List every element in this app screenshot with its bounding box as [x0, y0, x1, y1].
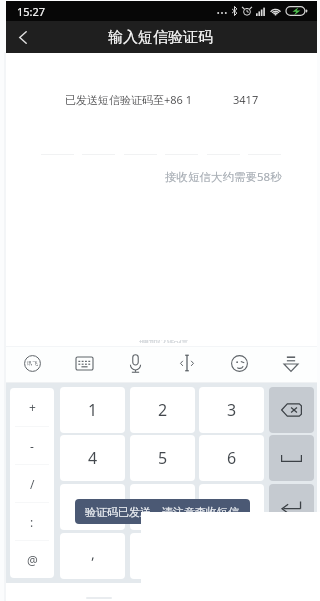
button[interactable]: Emoji	[223, 347, 255, 379]
staticText: 已发送短信验证码至+86 1	[65, 92, 193, 107]
staticText: 讯飞	[27, 360, 38, 367]
button[interactable]: +	[10, 388, 54, 426]
button[interactable]: 4	[60, 435, 125, 481]
button[interactable]: 9	[199, 484, 264, 530]
staticText: :	[30, 514, 34, 530]
button[interactable]: 8	[130, 484, 195, 530]
button[interactable]: Voice input	[119, 347, 151, 379]
button[interactable]: Space	[269, 435, 314, 481]
staticText: +	[29, 399, 36, 415]
staticText: 8	[158, 496, 168, 518]
button[interactable]: Backspace	[269, 387, 314, 433]
staticText: @	[27, 552, 38, 568]
button[interactable]: 1	[60, 387, 125, 433]
button[interactable]: Keyboard	[68, 347, 100, 379]
staticText: ,	[91, 544, 95, 563]
staticText: 增加(2)短信	[139, 340, 189, 343]
button[interactable]: Move cursor	[171, 347, 203, 379]
button[interactable]: 2	[130, 387, 195, 433]
staticText: 3417	[233, 92, 259, 107]
staticText: 4	[88, 447, 98, 469]
button[interactable]: ,	[60, 533, 125, 579]
button[interactable]: Back	[8, 22, 38, 52]
staticText: 接收短信大约需要58秒	[165, 169, 282, 185]
button[interactable]: -	[10, 427, 54, 464]
button[interactable]: Enter	[269, 484, 314, 530]
button[interactable]: 3	[199, 387, 264, 433]
staticText: 验证码已发送，请注意查收短信	[85, 505, 239, 519]
button[interactable]: 6	[199, 435, 264, 481]
staticText: 6	[227, 447, 237, 469]
button[interactable]: IME logo	[16, 347, 48, 379]
staticText: 3	[227, 399, 237, 421]
staticText: 2	[158, 399, 168, 421]
staticText: 5	[158, 447, 168, 469]
button[interactable]: @	[10, 541, 54, 578]
button[interactable]: 5	[130, 435, 195, 481]
button[interactable]: /	[10, 465, 54, 502]
button[interactable]: 7	[60, 484, 125, 530]
staticText: 输入短信验证码	[108, 28, 213, 47]
staticText: -	[30, 438, 34, 454]
staticText: 1	[88, 399, 98, 421]
staticText: 9	[227, 496, 237, 518]
button[interactable]: :	[10, 503, 54, 540]
button[interactable]: Hide keyboard	[275, 347, 307, 379]
staticText: 7	[88, 496, 98, 518]
staticText: 15:27	[17, 4, 46, 19]
staticText: /	[30, 476, 35, 492]
